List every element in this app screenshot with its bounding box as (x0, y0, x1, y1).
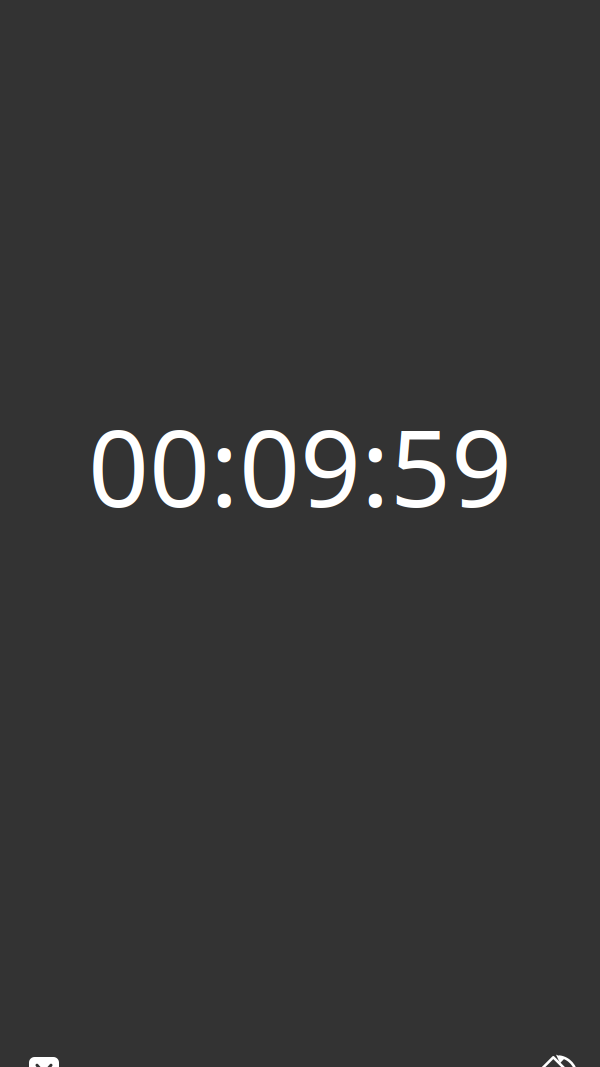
staticText: 00:09:59 (88, 395, 512, 536)
button[interactable]: Reset (530, 1046, 578, 1067)
button[interactable]: Compose (22, 1048, 66, 1067)
